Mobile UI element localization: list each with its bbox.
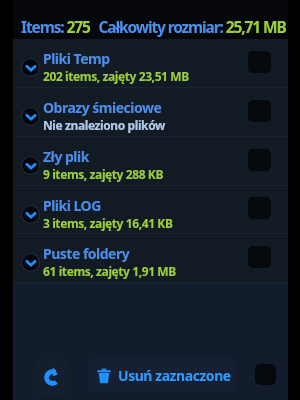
- staticText: Items: 275 Całkowity rozmiar: 25,71 MB: [21, 16, 286, 37]
- button[interactable]: Pliki LOG: [13, 186, 288, 234]
- button[interactable]: Zły plik: [13, 137, 288, 186]
- staticText: 202 items, zajęty 23,51 MB: [43, 68, 189, 84]
- button[interactable]: Refresh: [34, 359, 70, 395]
- staticText: Usuń zaznaczone: [118, 366, 231, 385]
- button[interactable]: Select: [248, 197, 271, 219]
- button[interactable]: Usuń zaznaczone: [88, 358, 236, 392]
- staticText: Pliki Temp: [43, 49, 110, 68]
- staticText: 61 items, zajęty 1,91 MB: [43, 263, 176, 279]
- staticText: 3 items, zajęty 16,41 KB: [43, 215, 173, 231]
- button[interactable]: Select: [248, 100, 271, 122]
- staticText: Nie znaleziono plików: [43, 117, 165, 133]
- button[interactable]: Pliki Temp: [13, 39, 288, 88]
- staticText: Pliki LOG: [43, 196, 101, 215]
- staticText: Obrazy śmieciowe: [43, 98, 162, 117]
- button[interactable]: Select: [248, 149, 271, 171]
- button[interactable]: Select: [248, 246, 271, 268]
- button[interactable]: Select all: [255, 364, 276, 385]
- button[interactable]: Select: [248, 51, 271, 73]
- button[interactable]: Obrazy śmieciowe: [13, 88, 288, 137]
- staticText: Zły plik: [43, 147, 89, 166]
- staticText: 9 items, zajęty 288 KB: [43, 166, 164, 182]
- button[interactable]: Puste foldery: [13, 234, 288, 283]
- staticText: Puste foldery: [43, 244, 130, 263]
